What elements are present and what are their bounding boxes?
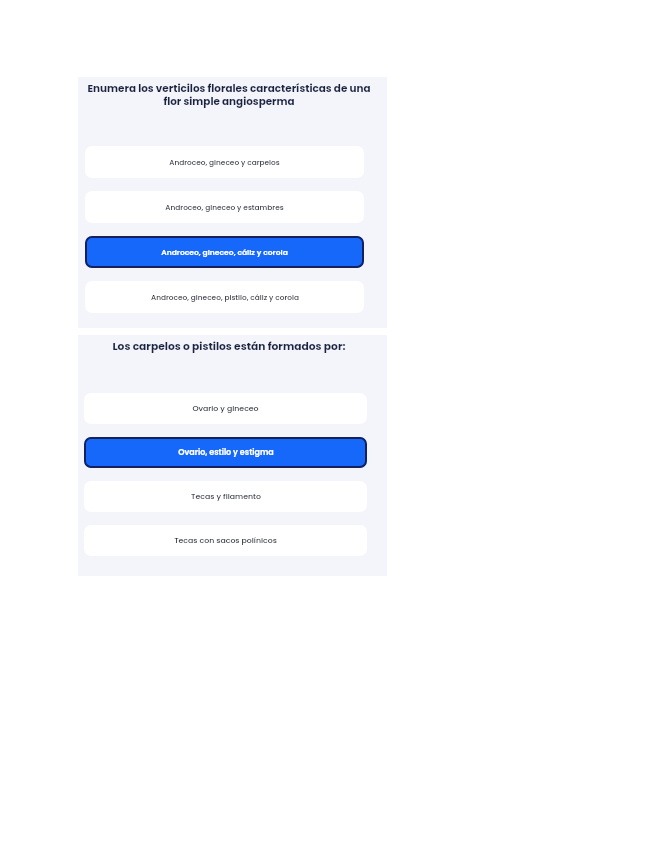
staticText: Ovario, estilo y estigma [178, 447, 274, 458]
button[interactable]: Ovario, estilo y estigma [84, 437, 367, 468]
staticText: Androceo, gineceo y estambres [165, 202, 284, 212]
staticText: Enumera los verticilos florales caracter… [83, 81, 375, 108]
staticText: Tecas y filamento [191, 491, 261, 502]
button[interactable]: Ovario y gineceo [84, 393, 367, 424]
button[interactable]: Androceo, gineceo, pistilo, cáliz y coro… [85, 281, 364, 313]
staticText: Tecas con sacos polínicos [174, 535, 277, 546]
button[interactable]: Tecas con sacos polínicos [84, 525, 367, 556]
staticText: Androceo, gineceo y carpelos [169, 157, 280, 167]
button[interactable]: Tecas y filamento [84, 481, 367, 512]
button[interactable]: Androceo, gineceo, cáliz y corola [85, 236, 364, 268]
staticText: Ovario y gineceo [192, 403, 259, 414]
staticText: Androceo, gineceo, pistilo, cáliz y coro… [151, 292, 299, 302]
staticText: Los carpelos o pistilos están formados p… [83, 339, 375, 354]
button[interactable]: Androceo, gineceo y carpelos [85, 146, 364, 178]
staticText: Androceo, gineceo, cáliz y corola [161, 247, 288, 258]
button[interactable]: Androceo, gineceo y estambres [85, 191, 364, 223]
